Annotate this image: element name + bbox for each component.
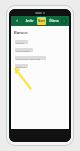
staticText: Archivo xyxy=(25,19,34,23)
staticText: Banque xyxy=(16,65,26,68)
button[interactable]: Cuenta de usuario xyxy=(61,18,67,24)
staticText: Santos xyxy=(16,41,24,44)
staticText: Nuevo Banco xyxy=(38,19,45,23)
staticText: Últimas Aperturas xyxy=(49,19,59,23)
button[interactable]: Nuevo Banco xyxy=(37,17,46,25)
button[interactable]: Santos xyxy=(15,40,28,44)
button[interactable]: Banque xyxy=(15,64,28,68)
staticText: Banco: xyxy=(14,30,28,36)
button[interactable]: Últimas Aperturas xyxy=(48,17,60,25)
staticText: < Atrás xyxy=(13,19,21,23)
button[interactable]: Comercial Corporate xyxy=(15,56,46,60)
button[interactable]: Corporativo xyxy=(15,48,33,52)
button[interactable]: Archivo xyxy=(24,17,35,25)
staticText: Corporativo xyxy=(16,49,30,52)
staticText: Comercial Corporate xyxy=(16,57,41,60)
button[interactable]: < Atrás xyxy=(12,17,22,25)
